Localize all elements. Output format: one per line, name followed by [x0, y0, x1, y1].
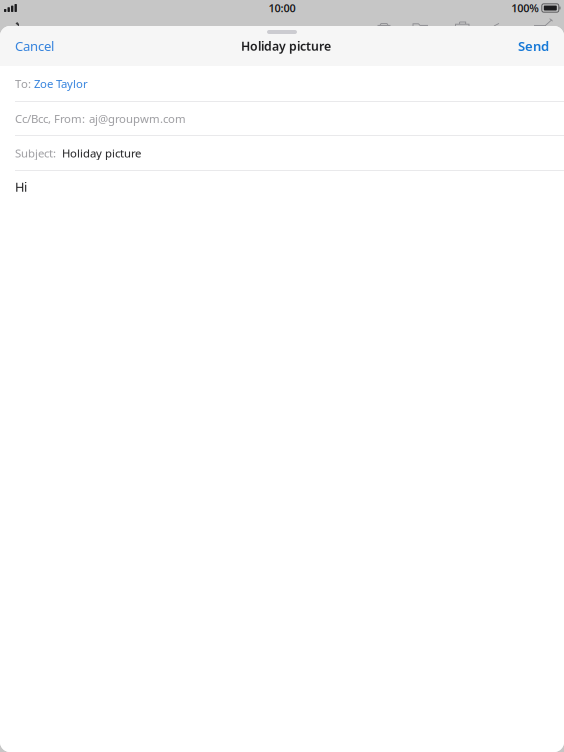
- button[interactable]: To:: [0, 66, 564, 101]
- staticText: Holiday picture: [62, 145, 141, 161]
- staticText: aj@groupwm.com: [89, 111, 186, 126]
- staticText: 10:00: [268, 1, 295, 15]
- button[interactable]: Cc/Bcc, From:: [0, 102, 564, 135]
- button[interactable]: Send: [518, 37, 549, 55]
- staticText: 100%: [511, 1, 539, 15]
- button[interactable]: Subject:: [0, 136, 564, 170]
- staticText: Zoe Taylor: [34, 76, 88, 91]
- staticText: Cancel: [15, 37, 54, 55]
- staticText: Subject:: [15, 145, 56, 161]
- staticText: Cc/Bcc, From:: [15, 111, 85, 126]
- button[interactable]: Hi: [0, 171, 564, 203]
- staticText: Hi: [15, 178, 27, 195]
- staticText: Send: [518, 37, 549, 55]
- staticText: To:: [15, 76, 31, 91]
- staticText: Holiday picture: [241, 37, 331, 54]
- button[interactable]: Cancel: [15, 37, 54, 55]
